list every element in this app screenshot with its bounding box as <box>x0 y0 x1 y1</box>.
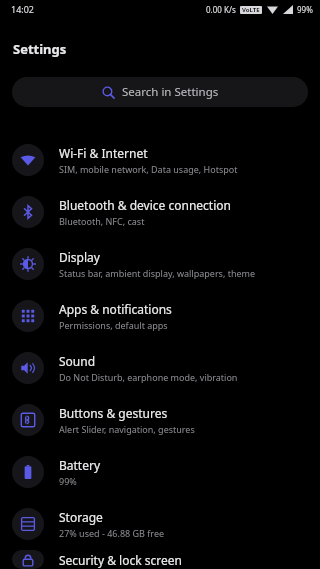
staticText: Settings <box>13 40 67 58</box>
staticText: Buttons & gestures <box>59 405 168 421</box>
button[interactable]: Battery <box>0 446 320 498</box>
button[interactable]: Bluetooth & device connection <box>0 186 320 238</box>
staticText: 99% <box>297 4 313 15</box>
staticText: Bluetooth & device connection <box>59 197 231 213</box>
staticText: VoLTE <box>242 6 260 14</box>
staticText: Wi-Fi & Internet <box>59 145 148 161</box>
button[interactable]: Security & lock screen <box>0 550 320 569</box>
staticText: Do Not Disturb, earphone mode, vibration <box>59 371 238 383</box>
staticText: 0.00 K/s <box>206 4 236 15</box>
staticText: Search in Settings <box>122 84 219 100</box>
staticText: 14:02 <box>11 3 35 15</box>
staticText: Display <box>59 249 100 265</box>
staticText: Apps & notifications <box>59 301 172 317</box>
staticText: Bluetooth, NFC, cast <box>59 215 145 227</box>
staticText: Alert Slider, navigation, gestures <box>59 423 195 435</box>
button[interactable]: Display <box>0 238 320 290</box>
staticText: Battery <box>59 457 101 473</box>
staticText: SIM, mobile network, Data usage, Hotspot <box>59 163 238 175</box>
button[interactable]: Apps & notifications <box>0 290 320 342</box>
staticText: Status bar, ambient display, wallpapers,… <box>59 267 256 279</box>
staticText: Security & lock screen <box>59 552 182 568</box>
staticText: 27% used - 46.88 GB free <box>59 527 165 539</box>
button[interactable]: Sound <box>0 342 320 394</box>
staticText: Sound <box>59 353 96 369</box>
staticText: Storage <box>59 509 103 525</box>
button[interactable]: Buttons & gestures <box>0 394 320 446</box>
button[interactable]: Search in Settings <box>12 77 308 107</box>
staticText: Permissions, default apps <box>59 319 168 331</box>
button[interactable]: Wi-Fi & Internet <box>0 134 320 186</box>
staticText: 99% <box>59 475 77 487</box>
button[interactable]: Storage <box>0 498 320 550</box>
